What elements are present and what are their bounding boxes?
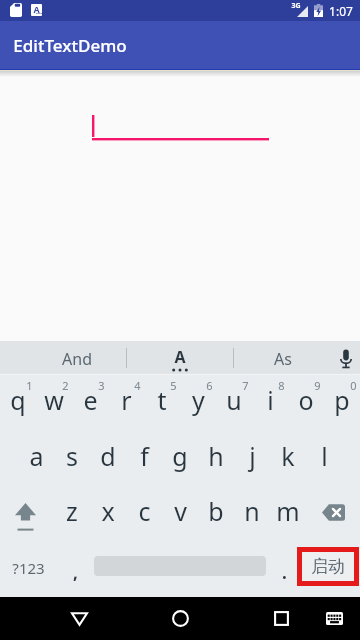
button[interactable]: v xyxy=(162,485,198,540)
staticText: q xyxy=(10,383,26,417)
staticText: 9 xyxy=(314,378,321,393)
button[interactable]: t xyxy=(144,375,180,430)
staticText: 6 xyxy=(206,378,213,393)
staticText: And xyxy=(62,348,92,370)
staticText: m xyxy=(276,494,300,528)
button[interactable]: l xyxy=(306,430,342,485)
staticText: 1 xyxy=(26,378,33,393)
button[interactable]: . xyxy=(266,540,302,595)
button[interactable]: n xyxy=(234,485,270,540)
button[interactable] xyxy=(94,540,266,595)
staticText: As xyxy=(274,348,292,370)
staticText: l xyxy=(321,439,328,473)
button[interactable]: Backspace xyxy=(306,485,360,540)
button[interactable]: z xyxy=(54,485,90,540)
staticText: c xyxy=(138,494,151,528)
staticText: 0 xyxy=(350,378,357,393)
button[interactable]: Home xyxy=(154,597,206,640)
button[interactable]: k xyxy=(270,430,306,485)
button[interactable]: p xyxy=(324,375,360,430)
button[interactable]: And xyxy=(28,341,126,375)
button[interactable]: Recent apps xyxy=(255,597,307,640)
button[interactable]: a xyxy=(18,430,54,485)
staticText: y xyxy=(192,383,205,417)
button[interactable]: Voice input xyxy=(332,341,360,375)
staticText: h xyxy=(208,439,224,473)
staticText: 3 xyxy=(98,378,105,393)
button[interactable]: Text input field xyxy=(92,115,269,144)
button[interactable]: i xyxy=(252,375,288,430)
staticText: x xyxy=(101,494,115,528)
button[interactable]: s xyxy=(54,430,90,485)
staticText: A xyxy=(174,346,186,368)
staticText: u xyxy=(226,383,242,417)
button[interactable]: r xyxy=(108,375,144,430)
button[interactable]: c xyxy=(126,485,162,540)
staticText: f xyxy=(140,439,149,473)
button[interactable]: ?123 xyxy=(0,540,56,595)
button[interactable]: 启动 xyxy=(302,552,354,581)
staticText: j xyxy=(249,439,256,473)
staticText: 3G xyxy=(291,1,301,11)
staticText: r xyxy=(121,383,132,417)
staticText: t xyxy=(157,383,167,417)
staticText: 7 xyxy=(242,378,249,393)
button[interactable]: y xyxy=(180,375,216,430)
staticText: A xyxy=(33,4,40,15)
button[interactable]: o xyxy=(288,375,324,430)
button[interactable]: h xyxy=(198,430,234,485)
staticText: o xyxy=(298,383,314,417)
staticText: 4 xyxy=(134,378,141,393)
staticText: d xyxy=(100,439,116,473)
button[interactable]: b xyxy=(198,485,234,540)
button[interactable]: d xyxy=(90,430,126,485)
staticText: , xyxy=(73,561,78,584)
button[interactable]: x xyxy=(90,485,126,540)
button[interactable]: As xyxy=(234,341,332,375)
staticText: e xyxy=(83,383,98,417)
staticText: n xyxy=(244,494,260,528)
button[interactable]: m xyxy=(270,485,306,540)
staticText: z xyxy=(66,494,78,528)
button[interactable]: q xyxy=(0,375,36,430)
button[interactable]: Switch keyboard xyxy=(310,597,358,640)
staticText: w xyxy=(44,383,64,417)
staticText: v xyxy=(174,494,187,528)
staticText: 1:07 xyxy=(329,3,353,19)
staticText: s xyxy=(66,439,78,473)
button[interactable]: , xyxy=(56,540,94,595)
button[interactable]: e xyxy=(72,375,108,430)
staticText: . xyxy=(282,561,287,584)
button[interactable]: j xyxy=(234,430,270,485)
staticText: g xyxy=(172,439,188,473)
staticText: p xyxy=(334,383,350,417)
staticText: b xyxy=(208,494,224,528)
staticText: 2 xyxy=(62,378,69,393)
button[interactable]: f xyxy=(126,430,162,485)
button[interactable]: Back xyxy=(53,597,105,640)
staticText: 8 xyxy=(278,378,285,393)
button[interactable]: u xyxy=(216,375,252,430)
button[interactable]: w xyxy=(36,375,72,430)
staticText: ?123 xyxy=(12,558,45,578)
staticText: 启动 xyxy=(311,556,345,577)
button[interactable]: g xyxy=(162,430,198,485)
button[interactable]: Shift xyxy=(0,485,54,540)
staticText: 5 xyxy=(170,378,177,393)
staticText: k xyxy=(281,439,295,473)
staticText: a xyxy=(29,439,44,473)
staticText: EditTextDemo xyxy=(13,34,127,57)
button[interactable]: A xyxy=(127,341,233,375)
staticText: i xyxy=(267,383,274,417)
